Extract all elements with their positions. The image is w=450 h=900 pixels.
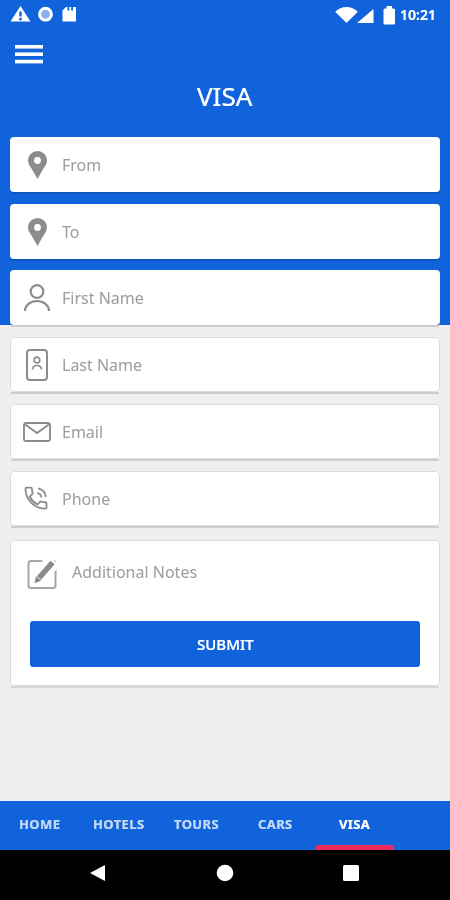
button[interactable]: To (10, 204, 440, 259)
button[interactable]: Additional Notes (10, 540, 440, 686)
staticText: Last Name (62, 354, 143, 376)
button[interactable]: Phone (10, 471, 440, 526)
button[interactable] (8, 37, 50, 71)
button[interactable]: From (10, 137, 440, 192)
staticText: HOME (19, 815, 61, 833)
button[interactable]: Last Name (10, 337, 440, 392)
button[interactable]: HOTELS (80, 801, 158, 846)
button[interactable]: HOME (1, 801, 79, 846)
staticText: Additional Notes (72, 561, 198, 583)
staticText: TOURS (174, 815, 220, 833)
staticText: VISA (197, 78, 253, 110)
staticText: From (62, 154, 102, 176)
staticText: CARS (258, 815, 293, 833)
staticText: 10:21 (400, 5, 436, 24)
staticText: Phone (62, 488, 111, 510)
button[interactable]: SUBMIT (30, 621, 420, 667)
staticText: VISA (339, 815, 371, 833)
staticText: First Name (62, 287, 144, 309)
button[interactable]: VISA (316, 801, 394, 846)
staticText: To (62, 221, 80, 243)
button[interactable]: TOURS (158, 801, 236, 846)
staticText: SUBMIT (197, 634, 254, 654)
staticText: HOTELS (93, 815, 145, 833)
button[interactable]: First Name (10, 270, 440, 325)
staticText: Email (62, 421, 104, 443)
button[interactable]: Email (10, 404, 440, 459)
button[interactable]: CARS (236, 801, 314, 846)
